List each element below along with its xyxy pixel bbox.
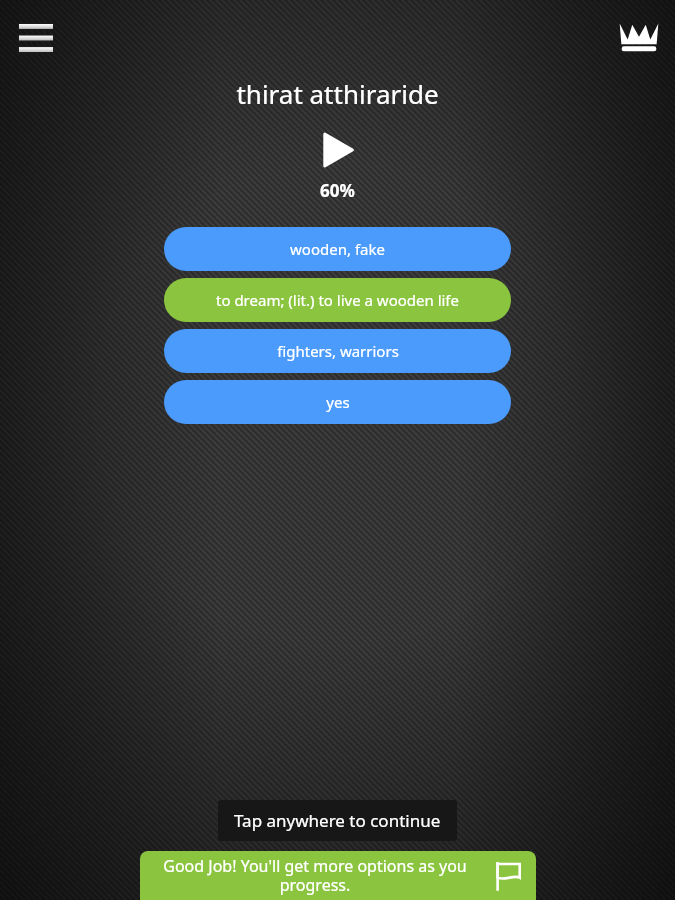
- button[interactable]: yes: [164, 380, 511, 424]
- staticText: thirat atthiraride: [236, 76, 439, 111]
- button[interactable]: Upgrade to premium: [611, 8, 667, 64]
- button[interactable]: Report: [480, 851, 536, 900]
- button[interactable]: Good Job! You'll get more options as you…: [140, 851, 536, 900]
- staticText: yes: [326, 392, 350, 412]
- button[interactable]: Menu: [10, 12, 62, 64]
- staticText: fighters, warriors: [277, 341, 399, 361]
- button[interactable]: fighters, warriors: [164, 329, 511, 373]
- button[interactable]: Play audio: [311, 123, 365, 177]
- button[interactable]: Tap anywhere to continue: [218, 800, 457, 841]
- staticText: Good Job! You'll get more options as you…: [154, 855, 476, 896]
- button[interactable]: to dream; (lit.) to live a wooden life: [164, 278, 511, 322]
- staticText: to dream; (lit.) to live a wooden life: [216, 290, 459, 310]
- staticText: Tap anywhere to continue: [234, 809, 441, 832]
- button[interactable]: wooden, fake: [164, 227, 511, 271]
- staticText: 60%: [320, 179, 355, 202]
- staticText: wooden, fake: [290, 239, 385, 259]
